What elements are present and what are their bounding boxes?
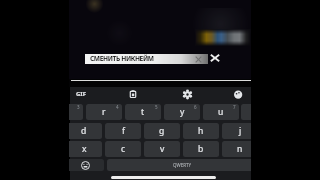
button[interactable]: b [183,141,219,157]
staticText: GIF [76,90,86,98]
button[interactable]: h [183,123,219,139]
staticText: f [122,125,125,137]
staticText: QWERTY [173,162,192,168]
button[interactable]: y [164,104,200,120]
button[interactable]: СМЕНИТЬ НИКНЕЙМ [85,54,208,64]
button[interactable]: x [69,141,102,157]
staticText: x [82,143,87,155]
staticText: 3 [77,104,80,110]
button[interactable]: r [86,104,122,120]
button[interactable]: n [222,141,251,157]
button[interactable]: u [203,104,239,120]
button[interactable]: j [222,123,251,139]
staticText: 7 [233,104,236,110]
button[interactable]: d [69,123,102,139]
staticText: d [81,125,87,137]
staticText: g [159,125,165,137]
button[interactable]: f [105,123,141,139]
staticText: 6 [194,104,197,110]
button[interactable]: g [144,123,180,139]
staticText: 5 [155,104,158,110]
button[interactable]: Emoji [69,159,104,171]
staticText: y [180,106,185,118]
button[interactable]: Close [208,51,222,65]
button[interactable]: 3 [69,104,83,120]
button[interactable]: t [125,104,161,120]
staticText: c [121,143,126,155]
staticText: v [160,143,165,155]
staticText: t [141,106,145,118]
staticText: 4 [116,104,119,110]
staticText: u [218,106,224,118]
button[interactable]: Settings [176,86,198,102]
button[interactable]: QWERTY [107,159,251,171]
button[interactable]: v [144,141,180,157]
button[interactable]: c [105,141,141,157]
button[interactable]: GIF [70,86,92,102]
staticText: СМЕНИТЬ НИКНЕЙМ [90,54,154,63]
staticText: h [198,125,204,137]
staticText: n [237,143,243,155]
button[interactable]: Clipboard [122,86,144,102]
button[interactable]: Theme [227,86,249,102]
staticText: j [239,125,242,137]
staticText: b [198,143,204,155]
staticText: r [102,106,106,118]
